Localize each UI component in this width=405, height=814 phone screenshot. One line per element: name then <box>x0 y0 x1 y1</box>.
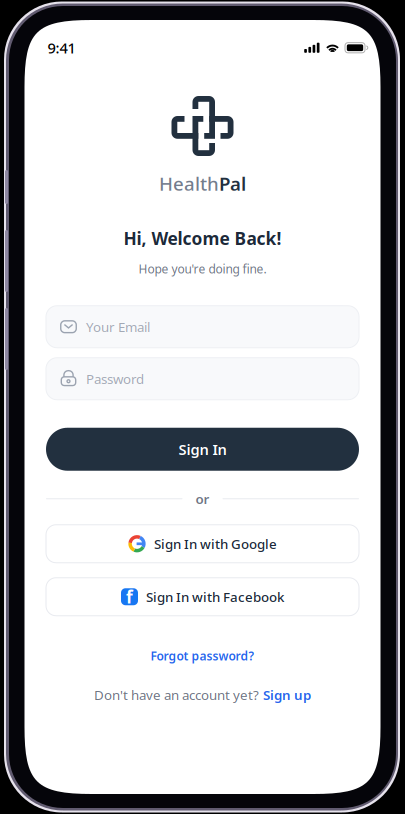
button[interactable]: Forgot password? <box>150 647 254 665</box>
staticText: Sign In with Facebook <box>146 588 284 606</box>
button[interactable]: Sign In <box>46 428 359 471</box>
button[interactable]: f <box>46 578 359 616</box>
staticText: Sign In <box>178 439 226 459</box>
staticText: Forgot password? <box>150 648 254 664</box>
staticText: Sign up <box>263 686 311 704</box>
staticText: Hi, Welcome Back! <box>123 227 281 250</box>
staticText: 9:41 <box>47 38 75 57</box>
staticText: Hope you're doing fine. <box>138 261 266 277</box>
staticText: Don't have an account yet? <box>94 686 259 704</box>
button[interactable]: Sign up <box>263 686 311 704</box>
staticText: Password <box>86 370 144 388</box>
staticText: f <box>126 585 133 608</box>
staticText: or <box>195 490 209 508</box>
staticText: Pal <box>219 171 246 196</box>
button[interactable]: Sign In with Google <box>46 525 359 563</box>
staticText: Health <box>159 171 219 196</box>
staticText: Your Email <box>86 318 150 336</box>
staticText: Sign In with Google <box>154 535 277 553</box>
